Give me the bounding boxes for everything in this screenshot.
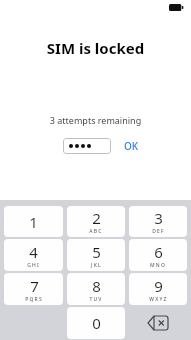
staticText: 3 attempts remaining: [0, 114, 191, 126]
staticText: 1: [29, 212, 38, 232]
staticText: MNO: [150, 262, 166, 269]
staticText: 9: [154, 276, 163, 296]
staticText: PQRS: [25, 296, 43, 303]
staticText: 6: [154, 242, 163, 262]
button[interactable]: 8: [67, 273, 125, 305]
button[interactable]: Backspace: [129, 307, 187, 339]
staticText: ABC: [89, 228, 103, 235]
button[interactable]: 1: [4, 206, 63, 237]
button[interactable]: OK: [124, 139, 139, 153]
staticText: OK: [124, 139, 139, 153]
staticText: 7: [30, 276, 39, 296]
staticText: 2: [92, 208, 101, 228]
staticText: TUV: [89, 296, 103, 303]
staticText: GHI: [27, 262, 40, 269]
staticText: 8: [92, 276, 101, 296]
staticText: 3: [154, 208, 163, 228]
button[interactable]: [63, 138, 111, 154]
button[interactable]: 9: [129, 273, 187, 305]
button[interactable]: 2: [67, 206, 125, 237]
staticText: 4: [29, 242, 38, 262]
staticText: 0: [92, 313, 101, 333]
button[interactable]: 0: [67, 307, 125, 339]
button[interactable]: 4: [4, 239, 63, 271]
staticText: WXYZ: [149, 296, 168, 303]
staticText: DEF: [152, 228, 165, 235]
button[interactable]: 5: [67, 239, 125, 271]
button[interactable]: 3: [129, 206, 187, 237]
button[interactable]: 7: [4, 273, 63, 305]
button[interactable]: 6: [129, 239, 187, 271]
staticText: JKL: [91, 262, 102, 269]
staticText: 5: [92, 242, 101, 262]
staticText: SIM is locked: [0, 38, 191, 58]
